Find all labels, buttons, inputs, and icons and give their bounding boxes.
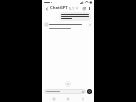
button[interactable]: More options: [87, 6, 92, 11]
button[interactable]: [59, 12, 91, 21]
button[interactable]: Back: [44, 6, 49, 11]
button[interactable]: New chat: [82, 6, 87, 11]
button[interactable]: [44, 89, 86, 94]
button[interactable]: Home: [65, 96, 71, 102]
button[interactable]: Dismiss: [88, 23, 91, 26]
button[interactable]: Scroll to bottom: [65, 81, 71, 87]
staticText: ChatGPT: [50, 5, 68, 11]
button[interactable]: ChatGPT: [50, 5, 78, 11]
button[interactable]: Dismiss: [45, 23, 91, 26]
button[interactable]: Recent apps: [51, 96, 57, 102]
button[interactable]: Voice mode: [87, 89, 92, 94]
button[interactable]: Back: [80, 96, 86, 102]
staticText: 5.1: [69, 6, 75, 11]
